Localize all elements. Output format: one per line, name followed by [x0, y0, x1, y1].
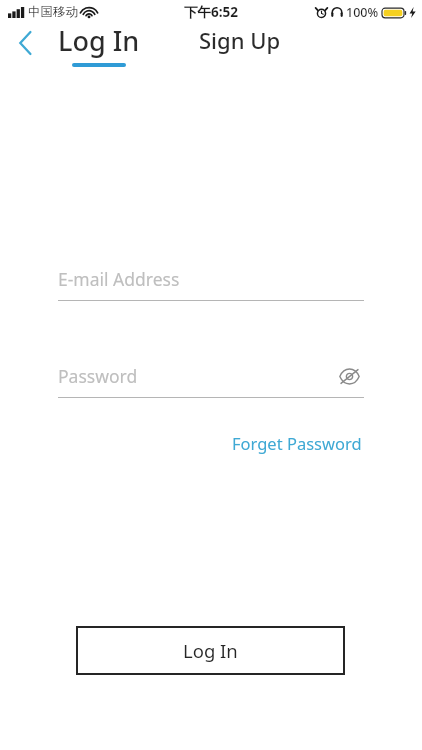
- staticText: 中国移动: [28, 4, 78, 20]
- button[interactable]: Log In: [76, 626, 345, 675]
- staticText: Log In: [58, 22, 140, 59]
- staticText: Log In: [183, 638, 238, 663]
- staticText: Forget Password: [232, 432, 362, 454]
- button[interactable]: Log In: [52, 20, 146, 69]
- button[interactable]: E-mail Address: [58, 258, 364, 300]
- staticText: Sign Up: [199, 25, 281, 55]
- staticText: 下午6:52: [184, 3, 238, 21]
- button[interactable]: Sign Up: [193, 22, 287, 58]
- staticText: E-mail Address: [58, 267, 180, 291]
- button[interactable]: Back: [8, 26, 42, 60]
- staticText: 100%: [346, 4, 379, 21]
- button[interactable]: Forget Password: [230, 428, 364, 458]
- button[interactable]: Password: [58, 355, 364, 397]
- staticText: Password: [58, 364, 138, 388]
- button[interactable]: Show password: [334, 361, 364, 391]
